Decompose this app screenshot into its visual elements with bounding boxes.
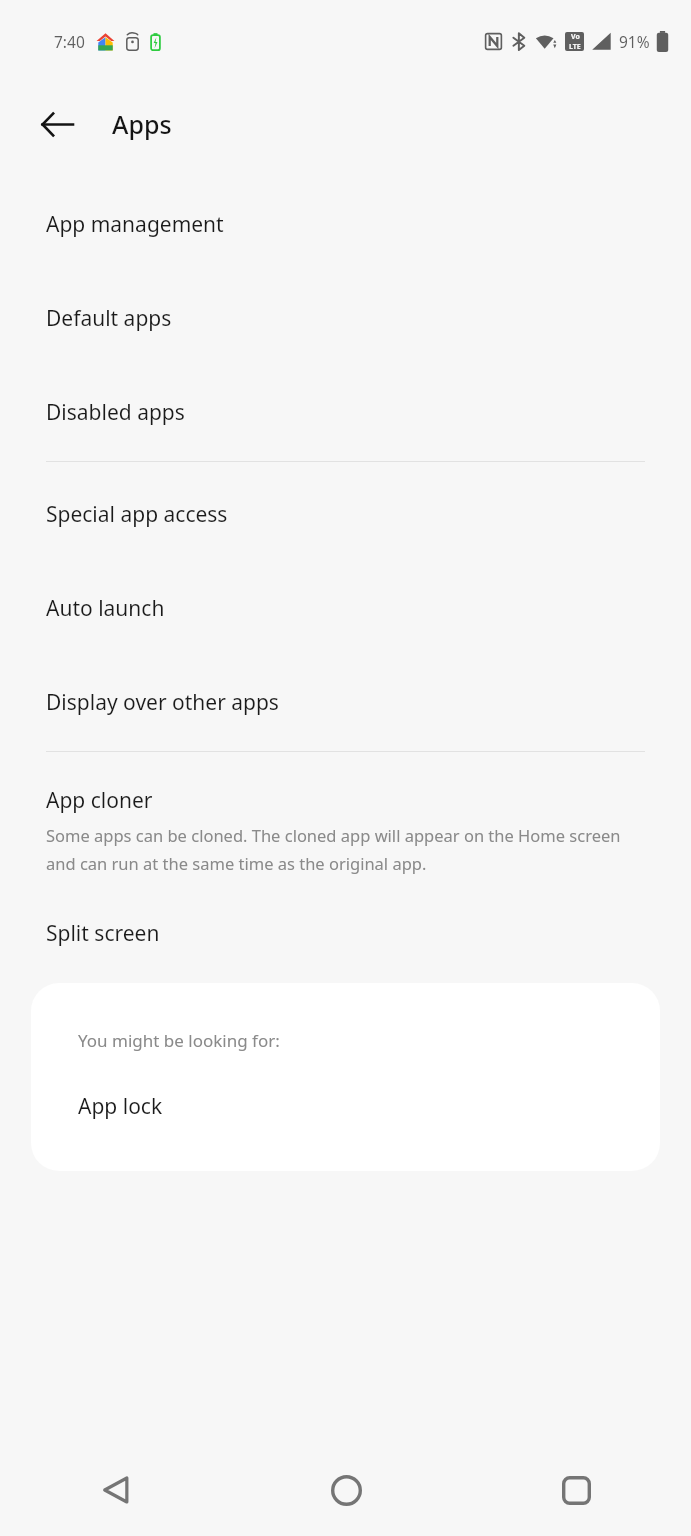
button[interactable]: Default apps	[0, 298, 691, 339]
staticText: App cloner	[46, 786, 153, 815]
button[interactable]: Recent apps	[461, 1444, 691, 1536]
staticText: Special app access	[46, 500, 228, 529]
staticText: Some apps can be cloned. The cloned app …	[46, 824, 645, 875]
button[interactable]: Back	[0, 1444, 231, 1536]
button[interactable]: Special app access	[0, 494, 691, 535]
button[interactable]: App management	[0, 204, 691, 245]
staticText: Vo	[571, 32, 580, 42]
button[interactable]: Back	[28, 95, 86, 153]
staticText: Split screen	[46, 919, 160, 948]
staticText: LTE	[569, 42, 581, 51]
staticText: App lock	[78, 1092, 163, 1121]
staticText: Auto launch	[46, 594, 165, 623]
staticText: 7:40	[54, 31, 85, 52]
staticText: Display over other apps	[46, 688, 279, 717]
button[interactable]: Auto launch	[0, 588, 691, 629]
staticText: App management	[46, 210, 224, 239]
button[interactable]: Home	[231, 1444, 461, 1536]
staticText: 91%	[619, 31, 650, 52]
button[interactable]: App lock	[31, 1086, 660, 1127]
staticText: You might be looking for:	[78, 1029, 280, 1052]
staticText: Apps	[112, 107, 172, 141]
button[interactable]: Display over other apps	[0, 682, 691, 723]
button[interactable]: App cloner	[0, 780, 691, 881]
button[interactable]: Split screen	[0, 913, 691, 954]
staticText: Default apps	[46, 304, 172, 333]
button[interactable]: Disabled apps	[0, 392, 691, 433]
staticText: Disabled apps	[46, 398, 185, 427]
